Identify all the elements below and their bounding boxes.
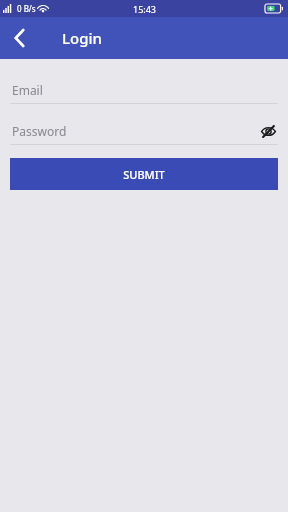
staticText: Password [12,123,67,139]
button[interactable]: SUBMIT [10,158,278,190]
staticText: 15:43 [133,3,157,15]
button[interactable]: Email [0,77,288,103]
staticText: SUBMIT [123,167,165,182]
staticText: Email [12,82,43,98]
staticText: Login [62,28,102,48]
button[interactable]: Back [4,23,34,53]
button[interactable]: Password [0,118,288,144]
staticText: 0 B/s [17,3,36,14]
button[interactable]: Show password [257,120,279,142]
